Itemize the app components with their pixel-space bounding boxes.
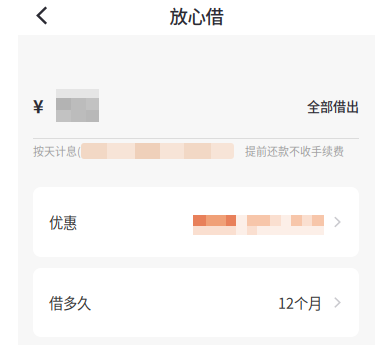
staticText: 借多久	[49, 292, 91, 313]
staticText: 按天计息(	[33, 143, 81, 159]
button[interactable]: 全部借出	[307, 96, 359, 115]
button[interactable]: 借多久	[33, 268, 359, 337]
staticText: 全部借出	[307, 96, 359, 115]
staticText: 优惠	[49, 212, 77, 232]
staticText: 12个月	[278, 292, 322, 313]
button[interactable]: 优惠	[33, 187, 359, 257]
staticText: 提前还款不收手续费	[245, 143, 344, 159]
staticText: ¥	[33, 93, 44, 118]
staticText: 放心借	[169, 2, 223, 29]
